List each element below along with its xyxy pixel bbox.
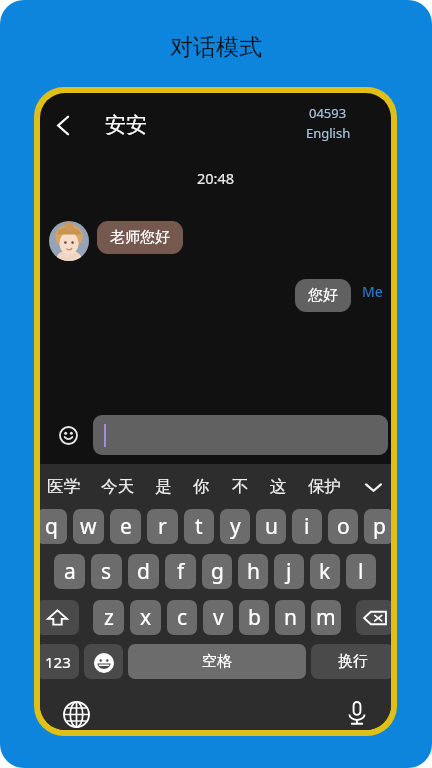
button[interactable] <box>93 415 388 455</box>
staticText: m <box>316 603 336 632</box>
staticText: 老师您好 <box>110 228 170 247</box>
staticText: e <box>120 512 132 541</box>
button[interactable]: a <box>54 554 85 589</box>
button[interactable]: i <box>292 509 322 544</box>
staticText: t <box>195 512 203 541</box>
button[interactable]: 123 <box>40 644 79 679</box>
button[interactable]: 这 <box>270 476 287 497</box>
button[interactable]: w <box>73 509 104 544</box>
button[interactable]: p <box>364 509 391 544</box>
button[interactable]: 保护 <box>308 476 341 497</box>
staticText: b <box>248 603 261 632</box>
staticText: n <box>284 603 297 632</box>
staticText: English <box>306 124 351 142</box>
button[interactable]: k <box>310 554 340 589</box>
button[interactable]: n <box>275 600 305 635</box>
staticText: s <box>101 557 112 586</box>
staticText: x <box>140 603 152 632</box>
staticText: l <box>358 557 364 586</box>
staticText: v <box>213 603 224 632</box>
staticText: q <box>45 512 58 541</box>
button[interactable]: m <box>311 600 341 635</box>
staticText: w <box>80 512 97 541</box>
staticText: 123 <box>45 652 71 672</box>
staticText: h <box>247 557 260 586</box>
button[interactable]: 不 <box>232 476 249 497</box>
button[interactable]: Emoji <box>53 420 83 450</box>
staticText: d <box>137 557 150 586</box>
button[interactable]: s <box>91 554 122 589</box>
button[interactable]: j <box>274 554 304 589</box>
staticText: r <box>158 512 167 541</box>
staticText: f <box>177 557 185 586</box>
button[interactable]: f <box>165 554 196 589</box>
button[interactable]: Back <box>42 104 84 146</box>
button[interactable]: 换行 <box>311 644 391 679</box>
staticText: c <box>177 603 188 632</box>
button[interactable]: r <box>147 509 178 544</box>
button[interactable]: Shift <box>40 600 79 635</box>
button[interactable]: q <box>40 509 67 544</box>
staticText: a <box>64 557 76 586</box>
staticText: u <box>265 512 278 541</box>
button[interactable]: g <box>202 554 232 589</box>
staticText: 空格 <box>202 652 232 671</box>
button[interactable]: o <box>328 509 358 544</box>
button[interactable]: Emoji keyboard <box>84 644 123 679</box>
staticText: 换行 <box>338 652 368 671</box>
button[interactable]: t <box>184 509 214 544</box>
button[interactable]: 你 <box>193 476 210 497</box>
button[interactable]: l <box>346 554 376 589</box>
button[interactable]: Hide suggestions <box>362 476 384 498</box>
staticText: o <box>337 512 350 541</box>
button[interactable]: v <box>203 600 233 635</box>
button[interactable]: e <box>110 509 141 544</box>
button[interactable]: Switch language <box>59 697 93 730</box>
staticText: z <box>104 603 114 632</box>
button[interactable]: z <box>93 600 124 635</box>
button[interactable]: b <box>239 600 269 635</box>
button[interactable]: c <box>167 600 197 635</box>
staticText: 20:48 <box>197 168 235 188</box>
staticText: 安安 <box>105 112 147 138</box>
button[interactable]: 是 <box>155 476 172 497</box>
button[interactable]: y <box>220 509 250 544</box>
button[interactable]: u <box>256 509 286 544</box>
button[interactable]: h <box>238 554 268 589</box>
staticText: y <box>230 512 241 541</box>
button[interactable]: 04593 <box>303 104 353 142</box>
staticText: k <box>319 557 331 586</box>
staticText: g <box>211 557 224 586</box>
button[interactable]: 医学 <box>47 476 80 497</box>
staticText: Me <box>362 282 383 301</box>
button[interactable]: 空格 <box>128 644 306 679</box>
staticText: i <box>304 512 310 541</box>
staticText: 您好 <box>308 286 338 305</box>
button[interactable]: d <box>128 554 159 589</box>
staticText: 对话模式 <box>170 33 262 62</box>
staticText: p <box>373 512 386 541</box>
button[interactable]: 今天 <box>101 476 134 497</box>
button[interactable]: Backspace <box>356 600 391 635</box>
staticText: 04593 <box>309 104 347 122</box>
button[interactable]: x <box>130 600 161 635</box>
button[interactable]: Voice input <box>340 696 374 730</box>
staticText: j <box>286 557 292 586</box>
